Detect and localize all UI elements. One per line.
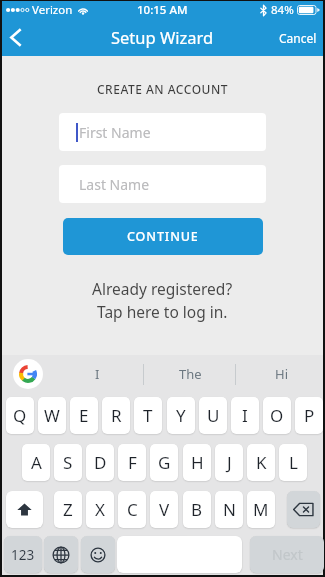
button[interactable]: Hi: [251, 355, 311, 393]
button[interactable]: F: [118, 444, 146, 481]
staticText: C: [127, 498, 138, 521]
staticText: M: [253, 498, 269, 521]
button[interactable]: M: [247, 491, 275, 528]
button[interactable]: J: [215, 444, 243, 481]
staticText: P: [304, 404, 315, 427]
button[interactable]: K: [247, 444, 275, 481]
button[interactable]: Q: [6, 397, 34, 434]
staticText: U: [207, 404, 220, 427]
button[interactable]: Back: [2, 19, 30, 56]
staticText: K: [256, 451, 267, 474]
staticText: A: [31, 451, 42, 474]
staticText: T: [143, 404, 153, 427]
staticText: V: [159, 498, 170, 521]
button[interactable]: CONTINUE: [63, 218, 263, 255]
staticText: The: [179, 365, 202, 383]
button[interactable]: Y: [167, 397, 195, 434]
button[interactable]: X: [86, 491, 114, 528]
staticText: L: [289, 451, 298, 474]
staticText: Next: [272, 545, 303, 564]
button[interactable]: Backspace: [287, 491, 320, 528]
button[interactable]: L: [279, 444, 307, 481]
staticText: CONTINUE: [127, 228, 199, 245]
button[interactable]: U: [199, 397, 227, 434]
button[interactable]: Cancel: [279, 19, 317, 56]
staticText: S: [63, 451, 73, 474]
staticText: E: [79, 404, 89, 427]
staticText: O: [270, 404, 284, 427]
staticText: Z: [63, 498, 73, 521]
staticText: Last Name: [79, 175, 150, 194]
button[interactable]: T: [134, 397, 162, 434]
button[interactable]: Change language: [44, 536, 78, 573]
staticText: CREATE AN ACCOUNT: [97, 81, 228, 97]
staticText: Verizon: [32, 2, 73, 18]
staticText: J: [227, 451, 232, 474]
staticText: Y: [176, 404, 186, 427]
button[interactable]: Last Name: [59, 165, 266, 203]
button[interactable]: A: [22, 444, 50, 481]
button[interactable]: S: [54, 444, 82, 481]
staticText: 123: [11, 546, 35, 564]
staticText: Cancel: [279, 30, 317, 46]
staticText: Tap here to log in.: [97, 301, 228, 322]
button[interactable]: G: [150, 444, 178, 481]
staticText: G: [158, 451, 171, 474]
staticText: N: [223, 498, 236, 521]
button[interactable]: O: [263, 397, 291, 434]
button[interactable]: B: [183, 491, 211, 528]
button[interactable]: V: [150, 491, 178, 528]
button[interactable]: Emoji: [81, 536, 115, 573]
staticText: F: [128, 451, 137, 474]
button[interactable]: N: [215, 491, 243, 528]
staticText: R: [111, 404, 122, 427]
button[interactable]: Z: [54, 491, 82, 528]
button[interactable]: Already registered?: [92, 278, 233, 322]
button[interactable]: C: [118, 491, 146, 528]
staticText: D: [94, 451, 107, 474]
button[interactable]: Next: [250, 536, 324, 573]
button[interactable]: Google: [13, 359, 43, 389]
button[interactable]: First Name: [59, 113, 266, 151]
button[interactable]: P: [295, 397, 323, 434]
staticText: Setup Wizard: [111, 26, 214, 48]
button[interactable]: Numbers: [4, 536, 42, 573]
staticText: X: [95, 498, 105, 521]
staticText: W: [44, 404, 60, 427]
staticText: I: [242, 404, 248, 427]
staticText: Q: [13, 404, 27, 427]
button[interactable]: Shift: [6, 491, 43, 528]
button[interactable]: H: [183, 444, 211, 481]
button[interactable]: I: [231, 397, 259, 434]
button[interactable]: E: [70, 397, 98, 434]
staticText: Already registered?: [92, 278, 233, 299]
staticText: Hi: [275, 365, 288, 383]
staticText: I: [95, 365, 100, 383]
button[interactable]: D: [86, 444, 114, 481]
button[interactable]: W: [38, 397, 66, 434]
staticText: B: [191, 498, 203, 521]
button[interactable]: The: [160, 355, 220, 393]
staticText: First Name: [79, 123, 151, 142]
staticText: H: [191, 451, 204, 474]
staticText: 84%: [271, 2, 294, 18]
staticText: 10:15 AM: [137, 2, 188, 18]
button[interactable]: R: [102, 397, 130, 434]
button[interactable]: I: [67, 355, 127, 393]
